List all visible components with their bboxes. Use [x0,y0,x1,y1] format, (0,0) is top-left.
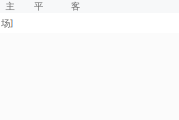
staticText: 主 [5,1,14,12]
staticText: 平 [34,1,43,12]
staticText: 客 [71,1,80,12]
staticText: 场] [1,17,13,29]
